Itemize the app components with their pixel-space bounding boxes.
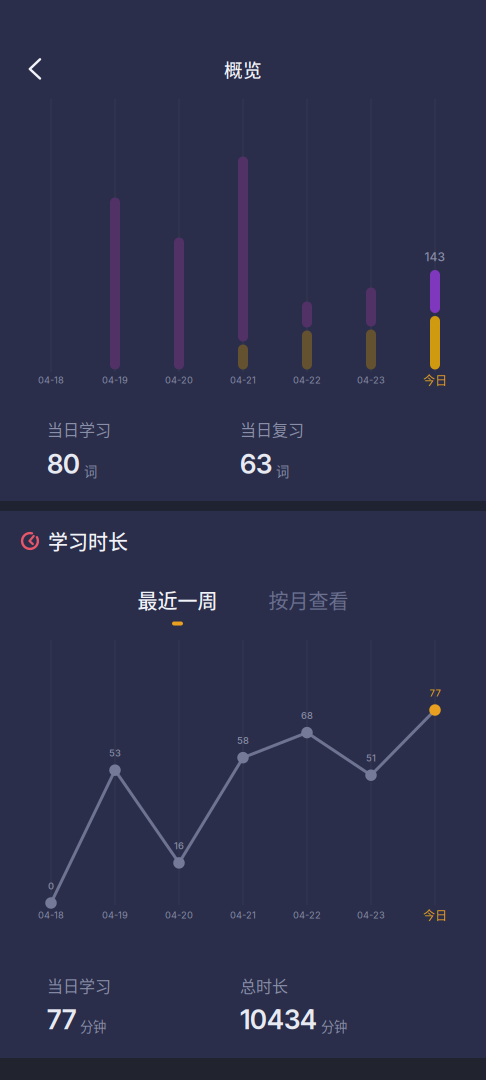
staticText: 58 bbox=[237, 735, 249, 746]
staticText: 51 bbox=[366, 752, 376, 764]
staticText: 总时长 bbox=[240, 974, 288, 997]
staticText: 概览 bbox=[224, 55, 262, 82]
staticText: 143 bbox=[424, 250, 445, 264]
staticText: 当日学习 bbox=[47, 417, 111, 441]
staticText: 04-21 bbox=[230, 374, 256, 386]
button[interactable]: 最近一周 bbox=[112, 582, 243, 634]
staticText: 04-20 bbox=[165, 374, 193, 386]
staticText: 词 bbox=[84, 461, 97, 480]
staticText: 当日学习 bbox=[47, 974, 111, 997]
staticText: 04-19 bbox=[102, 909, 128, 921]
staticText: 68 bbox=[301, 710, 313, 721]
staticText: 最近一周 bbox=[137, 585, 217, 614]
staticText: 04-18 bbox=[38, 909, 64, 921]
staticText: 按月查看 bbox=[268, 585, 348, 614]
button[interactable]: 返回 bbox=[12, 47, 56, 91]
staticText: 04-19 bbox=[102, 374, 128, 386]
staticText: 04-23 bbox=[357, 374, 385, 386]
staticText: 分钟 bbox=[321, 1016, 347, 1036]
staticText: 77 bbox=[429, 687, 440, 699]
staticText: 0 bbox=[48, 880, 54, 892]
staticText: 今日 bbox=[423, 371, 447, 389]
staticText: 今日 bbox=[423, 906, 447, 924]
staticText: 04-22 bbox=[293, 909, 321, 921]
staticText: 学习时长 bbox=[48, 526, 128, 555]
staticText: 16 bbox=[174, 840, 184, 852]
staticText: 04-22 bbox=[293, 374, 321, 386]
staticText: 当日复习 bbox=[240, 417, 304, 441]
staticText: 77 bbox=[47, 1003, 76, 1036]
staticText: 04-18 bbox=[38, 374, 64, 386]
staticText: 词 bbox=[276, 461, 289, 480]
staticText: 04-21 bbox=[230, 909, 256, 921]
staticText: 53 bbox=[109, 747, 121, 759]
staticText: 04-23 bbox=[357, 909, 385, 921]
staticText: 10434 bbox=[240, 1003, 317, 1036]
staticText: 80 bbox=[47, 448, 80, 480]
staticText: 04-20 bbox=[165, 909, 193, 921]
staticText: 分钟 bbox=[80, 1016, 106, 1036]
staticText: 63 bbox=[240, 448, 272, 480]
button[interactable]: 按月查看 bbox=[243, 582, 374, 634]
